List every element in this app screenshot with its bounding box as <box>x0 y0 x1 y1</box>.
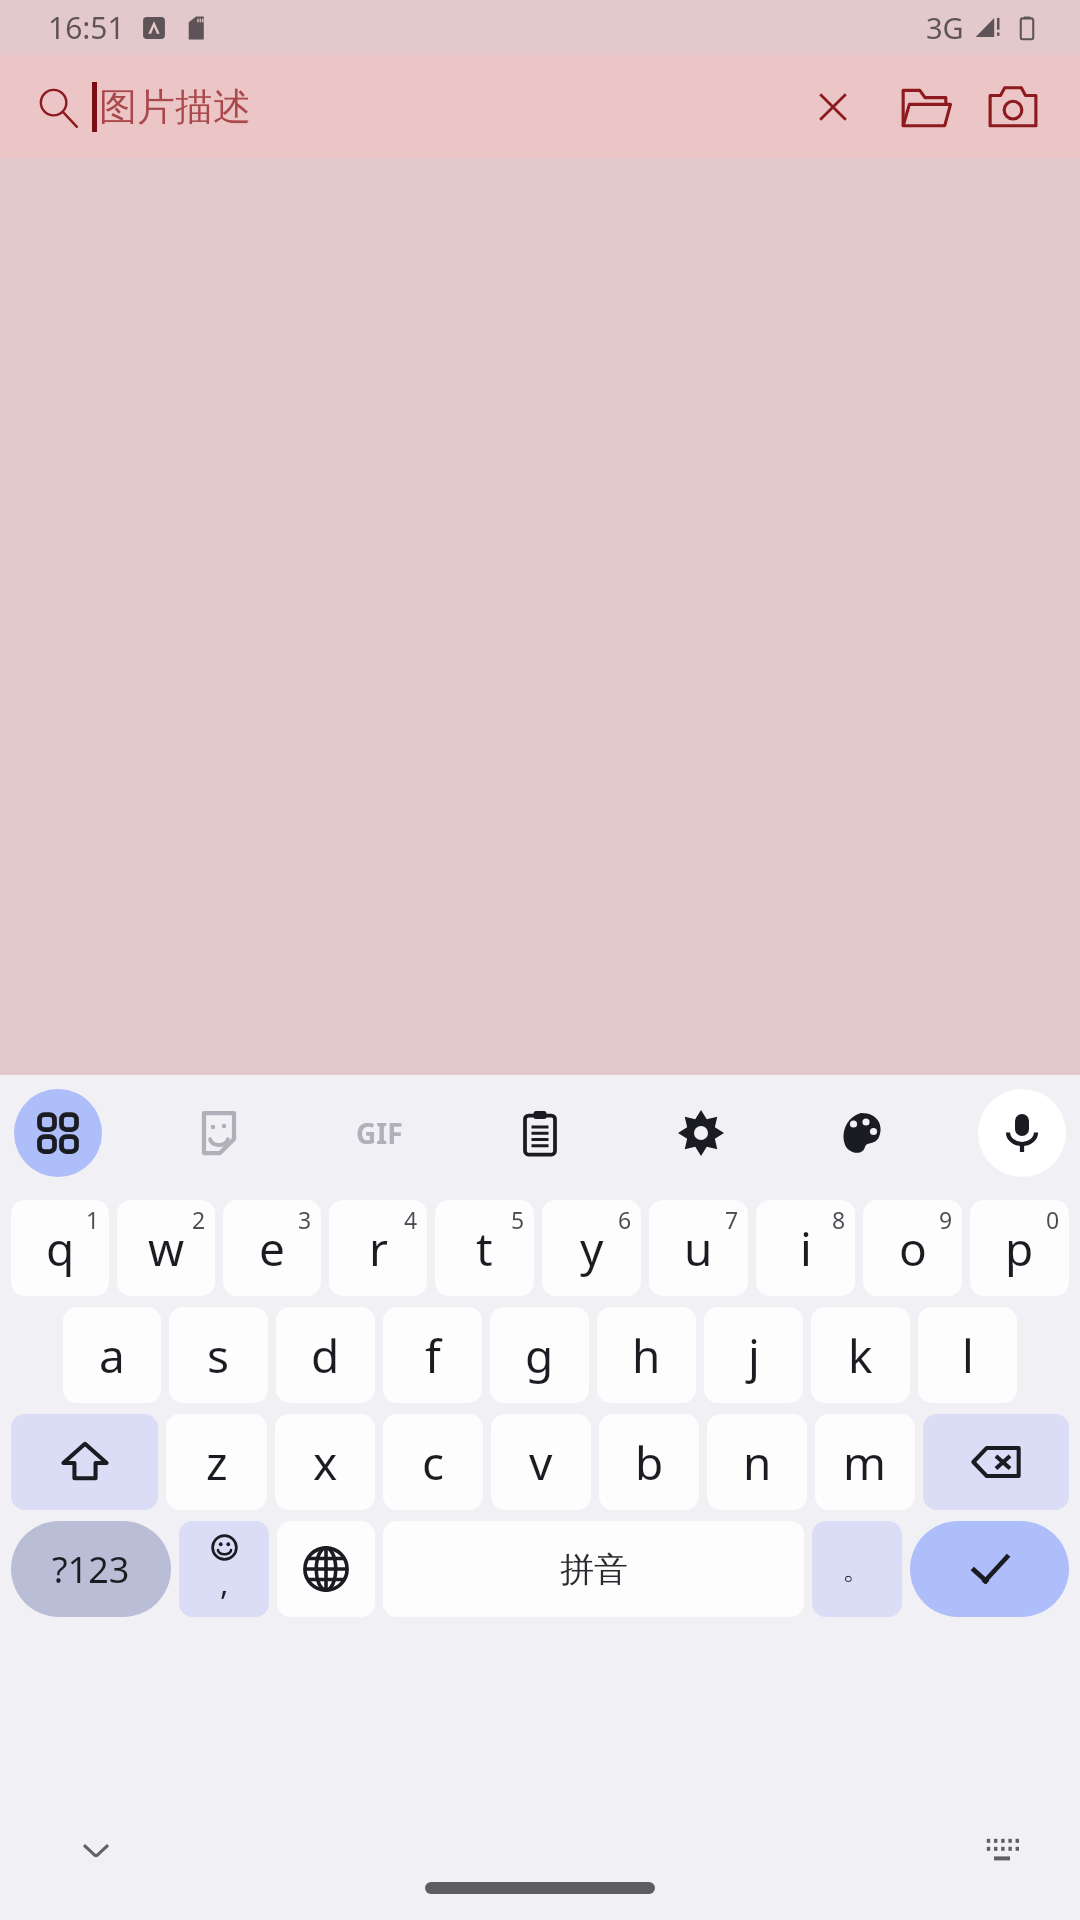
staticText: b <box>635 1431 664 1494</box>
button[interactable]: v <box>491 1414 591 1510</box>
staticText: 4 <box>404 1204 418 1235</box>
button[interactable]: m <box>815 1414 915 1510</box>
button[interactable]: Camera <box>974 68 1052 146</box>
staticText: i <box>800 1217 812 1280</box>
button[interactable]: Enter <box>910 1521 1069 1617</box>
button[interactable]: p <box>970 1200 1069 1296</box>
staticText: c <box>422 1431 445 1494</box>
button[interactable]: z <box>166 1414 267 1510</box>
button[interactable]: Themes <box>817 1089 905 1177</box>
staticText: s <box>207 1324 230 1387</box>
staticText: h <box>632 1324 661 1387</box>
button[interactable]: o <box>863 1200 962 1296</box>
staticText: r <box>369 1217 388 1280</box>
button[interactable]: q <box>11 1200 109 1296</box>
button[interactable]: f <box>383 1307 482 1403</box>
button[interactable]: d <box>276 1307 375 1403</box>
staticText: q <box>46 1217 75 1280</box>
staticText: w <box>148 1217 185 1280</box>
button[interactable]: 。 <box>812 1521 902 1617</box>
button[interactable]: t <box>435 1200 534 1296</box>
button[interactable]: n <box>707 1414 807 1510</box>
button[interactable]: Backspace <box>923 1414 1069 1510</box>
staticText: 0 <box>1046 1204 1060 1235</box>
button[interactable]: Stickers <box>175 1089 263 1177</box>
staticText: g <box>525 1324 554 1387</box>
button[interactable]: Voice input <box>978 1089 1066 1177</box>
button[interactable]: Hide keyboard <box>60 1814 132 1886</box>
staticText: p <box>1005 1217 1034 1280</box>
button[interactable]: l <box>918 1307 1017 1403</box>
button[interactable]: i <box>756 1200 855 1296</box>
staticText: n <box>743 1431 772 1494</box>
button[interactable]: 拼音 <box>383 1521 804 1617</box>
button[interactable]: Switch input method <box>966 1814 1038 1886</box>
button[interactable]: h <box>597 1307 696 1403</box>
staticText: 3G <box>926 8 964 47</box>
button[interactable]: e <box>223 1200 321 1296</box>
staticText: 拼音 <box>560 1548 628 1591</box>
staticText: 2 <box>192 1204 206 1235</box>
staticText: o <box>899 1217 927 1280</box>
button[interactable]: Shift <box>11 1414 158 1510</box>
button[interactable]: c <box>383 1414 483 1510</box>
staticText: x <box>313 1431 338 1494</box>
staticText: j <box>748 1324 760 1387</box>
button[interactable]: r <box>329 1200 427 1296</box>
button[interactable]: GIF <box>335 1089 423 1177</box>
button[interactable]: a <box>63 1307 161 1403</box>
staticText: 图片描述 <box>99 83 251 131</box>
button[interactable]: w <box>117 1200 215 1296</box>
button[interactable]: Search <box>30 79 86 135</box>
button[interactable]: ?123 <box>11 1521 171 1617</box>
staticText: l <box>962 1324 974 1387</box>
staticText: 1 <box>86 1204 100 1235</box>
button[interactable]: x <box>275 1414 375 1510</box>
staticText: m <box>843 1431 887 1494</box>
button[interactable]: b <box>599 1414 699 1510</box>
staticText: v <box>529 1431 553 1494</box>
staticText: u <box>684 1217 713 1280</box>
staticText: 7 <box>725 1204 739 1235</box>
staticText: f <box>425 1324 441 1387</box>
staticText: y <box>580 1217 604 1280</box>
staticText: , <box>220 1561 229 1605</box>
staticText: t <box>476 1217 493 1280</box>
button[interactable]: Clear <box>796 70 870 144</box>
button[interactable]: k <box>811 1307 910 1403</box>
button[interactable]: Settings <box>657 1089 745 1177</box>
staticText: 3 <box>298 1204 312 1235</box>
staticText: ?123 <box>52 1545 130 1594</box>
staticText: 6 <box>618 1204 632 1235</box>
button[interactable]: g <box>490 1307 589 1403</box>
button[interactable]: Apps <box>14 1089 102 1177</box>
staticText: 。 <box>842 1550 872 1588</box>
button[interactable]: u <box>649 1200 748 1296</box>
staticText: 16:51 <box>48 7 125 48</box>
staticText: d <box>311 1324 340 1387</box>
staticText: a <box>99 1324 125 1387</box>
staticText: GIF <box>356 1114 403 1152</box>
button[interactable]: Clipboard <box>496 1089 584 1177</box>
button[interactable]: j <box>704 1307 803 1403</box>
button[interactable]: s <box>169 1307 268 1403</box>
staticText: 9 <box>939 1204 953 1235</box>
button[interactable]: Emoji and comma <box>179 1521 269 1617</box>
button[interactable]: y <box>542 1200 641 1296</box>
button[interactable]: Change language <box>277 1521 375 1617</box>
staticText: z <box>206 1431 228 1494</box>
staticText: 5 <box>511 1204 525 1235</box>
staticText: e <box>259 1217 285 1280</box>
staticText: k <box>848 1324 873 1387</box>
button[interactable]: Open folder <box>886 68 964 146</box>
staticText: 8 <box>832 1204 846 1235</box>
